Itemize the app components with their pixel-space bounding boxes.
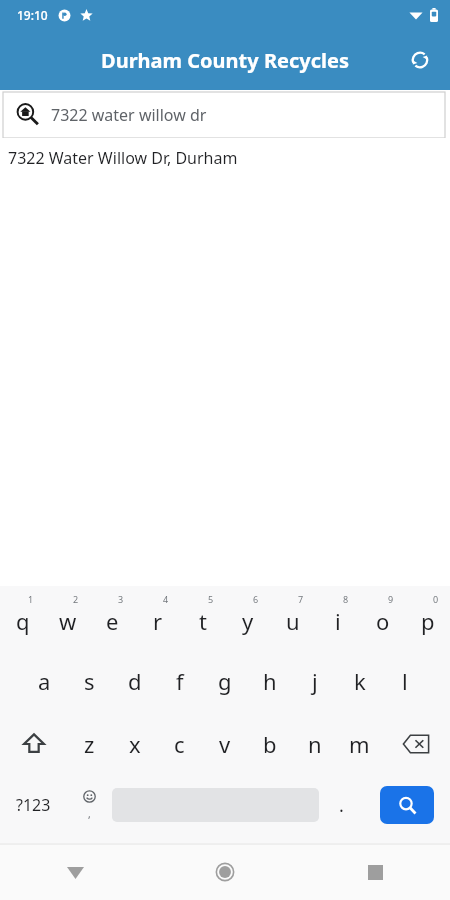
button[interactable]: c [157, 712, 202, 775]
button[interactable]: Emoji [67, 775, 112, 835]
button[interactable]: ?123 [0, 775, 67, 835]
staticText: d [128, 666, 142, 696]
staticText: , [88, 807, 91, 821]
staticText: 3 [118, 593, 124, 605]
staticText: 7322 water willow dr [51, 104, 207, 126]
button[interactable]: h [247, 649, 292, 712]
button[interactable]: x [112, 712, 157, 775]
staticText: y [242, 606, 254, 636]
staticText: 9 [388, 593, 394, 605]
button[interactable]: d [112, 649, 157, 712]
staticText: j [312, 666, 318, 696]
staticText: p [421, 606, 435, 636]
button[interactable]: 6 [225, 586, 270, 649]
staticText: 5 [208, 593, 214, 605]
staticText: g [218, 666, 232, 696]
button[interactable]: k [337, 649, 382, 712]
button[interactable]: 0 [405, 586, 450, 649]
button[interactable]: n [292, 712, 337, 775]
button[interactable]: 7 [270, 586, 315, 649]
staticText: o [376, 606, 390, 636]
button[interactable]: l [382, 649, 427, 712]
button[interactable]: g [202, 649, 247, 712]
staticText: 19:10 [17, 7, 48, 23]
button[interactable]: 9 [360, 586, 405, 649]
button[interactable]: Backspace [382, 712, 450, 775]
button[interactable]: Home [150, 844, 300, 900]
button[interactable]: j [292, 649, 337, 712]
staticText: r [153, 606, 163, 636]
staticText: x [129, 729, 141, 759]
staticText: t [199, 606, 207, 636]
staticText: a [38, 666, 51, 696]
staticText: 6 [253, 593, 259, 605]
staticText: k [354, 666, 366, 696]
button[interactable]: Shift [0, 712, 67, 775]
staticText: ?123 [16, 794, 51, 816]
staticText: m [349, 729, 370, 759]
staticText: z [84, 729, 95, 759]
button[interactable]: s [67, 649, 112, 712]
button[interactable]: 3 [90, 586, 135, 649]
button[interactable]: f [157, 649, 202, 712]
staticText: 4 [163, 593, 169, 605]
staticText: 2 [73, 593, 79, 605]
staticText: i [335, 606, 341, 636]
staticText: q [16, 606, 30, 636]
staticText: s [84, 666, 95, 696]
staticText: 1 [28, 593, 34, 605]
button[interactable]: 1 [0, 586, 45, 649]
button[interactable]: Back [0, 844, 150, 900]
staticText: 8 [343, 593, 349, 605]
staticText: . [339, 793, 344, 818]
button[interactable]: m [337, 712, 382, 775]
staticText: 7322 Water Willow Dr, Durham [8, 147, 238, 169]
button[interactable]: 8 [315, 586, 360, 649]
button[interactable]: Refresh [398, 38, 442, 82]
staticText: h [263, 666, 277, 696]
button[interactable]: z [67, 712, 112, 775]
button[interactable]: 7322 water willow dr [3, 92, 445, 138]
button[interactable]: . [319, 775, 364, 835]
staticText: Durham County Recycles [101, 47, 349, 74]
button[interactable]: 2 [45, 586, 90, 649]
button[interactable]: 5 [180, 586, 225, 649]
button[interactable]: Search [380, 786, 434, 824]
button[interactable]: v [202, 712, 247, 775]
staticText: v [219, 729, 231, 759]
button[interactable]: 4 [135, 586, 180, 649]
staticText: b [263, 729, 277, 759]
staticText: u [286, 606, 300, 636]
button[interactable]: b [247, 712, 292, 775]
staticText: f [176, 666, 184, 696]
staticText: 0 [433, 593, 439, 605]
button[interactable]: a [22, 649, 67, 712]
staticText: n [308, 729, 322, 759]
staticText: e [106, 606, 119, 636]
button[interactable]: Recents [300, 844, 450, 900]
button[interactable]: Space [112, 775, 319, 835]
staticText: 7 [298, 593, 304, 605]
staticText: l [402, 666, 408, 696]
button[interactable]: 7322 Water Willow Dr, Durham [0, 138, 450, 178]
staticText: c [174, 729, 185, 759]
staticText: w [59, 606, 77, 636]
